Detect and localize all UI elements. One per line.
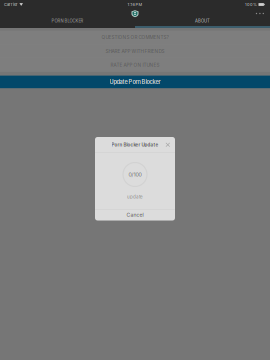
button[interactable]: SHARE APP WITH FRIENDS: [0, 44, 270, 58]
button[interactable]: ABOUT: [135, 9, 270, 28]
staticText: update: [127, 194, 143, 199]
button[interactable]: PORN BLOCKER: [0, 9, 135, 28]
staticText: SHARE APP WITH FRIENDS: [105, 48, 164, 54]
button[interactable]: Update Porn Blocker: [0, 76, 270, 88]
staticText: PORN BLOCKER: [51, 19, 83, 24]
button[interactable]: Cancel: [95, 209, 175, 220]
button[interactable]: More options: [254, 11, 266, 16]
staticText: RATE APP ON ITUNES: [110, 62, 159, 68]
staticText: Update Porn Blocker: [109, 78, 160, 85]
button[interactable]: Close: [164, 141, 172, 149]
staticText: Porn Blocker Update: [111, 142, 158, 147]
staticText: 1:16 PM: [127, 2, 142, 7]
staticText: 0/100: [128, 171, 141, 178]
staticText: Cancel: [126, 212, 143, 218]
button[interactable]: QUESTIONS OR COMMENTS?: [0, 31, 270, 44]
staticText: ABOUT: [195, 19, 210, 24]
staticText: 100%: [245, 2, 257, 7]
staticText: QUESTIONS OR COMMENTS?: [101, 34, 168, 40]
staticText: Carrier: [4, 2, 18, 7]
